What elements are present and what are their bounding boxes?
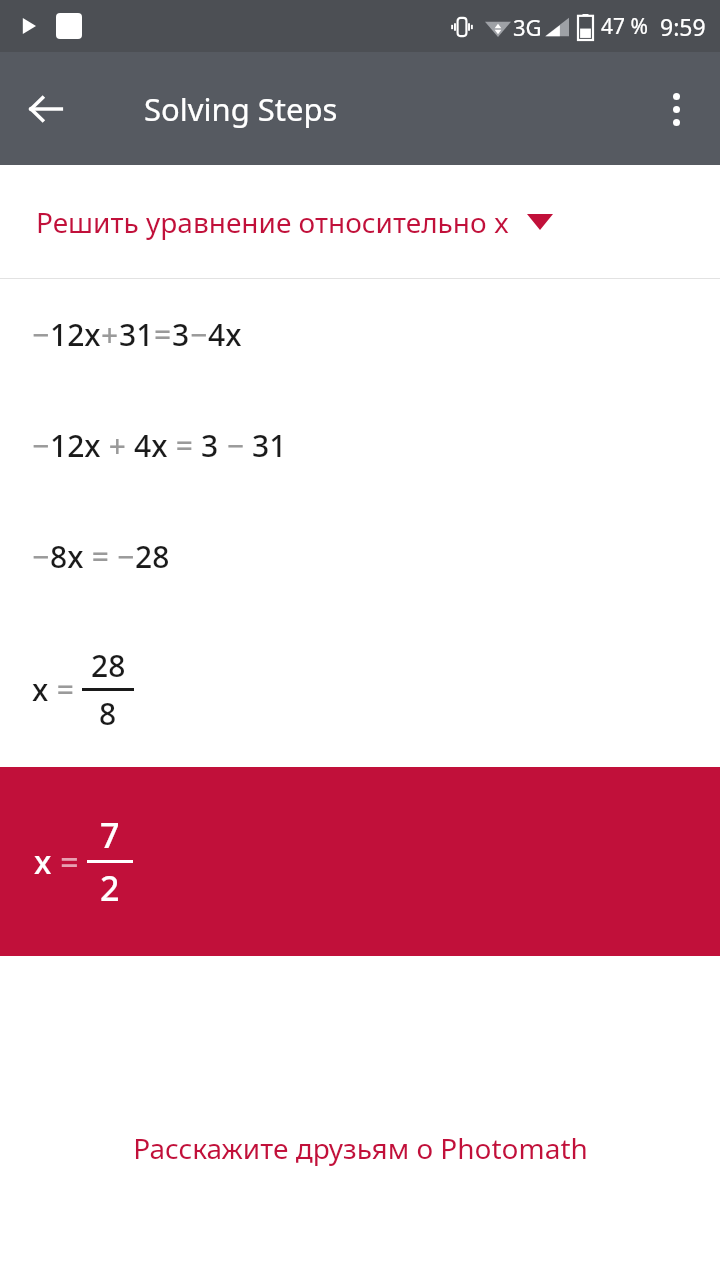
staticText: 8x xyxy=(50,536,84,577)
button[interactable]: Back xyxy=(10,73,82,145)
staticText: 31 xyxy=(252,425,287,466)
staticText: = xyxy=(84,536,117,577)
staticText: x xyxy=(32,669,49,710)
staticText: 9:59 xyxy=(660,11,706,42)
staticText: 31 xyxy=(119,314,154,355)
staticText: − xyxy=(117,536,135,577)
button[interactable]: Решить уравнение относительно x xyxy=(0,165,720,278)
button[interactable]: More options xyxy=(640,73,712,145)
staticText: 28 xyxy=(91,645,126,686)
button[interactable]: Расскажите друзьям о Photomath xyxy=(0,1100,720,1196)
staticText: x xyxy=(34,840,52,884)
staticText: 12x xyxy=(50,314,101,355)
staticText: Расскажите друзьям о Photomath xyxy=(133,1129,588,1167)
button[interactable]: − xyxy=(0,390,720,501)
staticText: 8 xyxy=(99,693,117,734)
staticText: − xyxy=(219,425,252,466)
staticText: 2 xyxy=(100,865,120,911)
staticText: 3 xyxy=(172,314,190,355)
staticText: 7 xyxy=(100,812,120,858)
staticText: = xyxy=(168,425,201,466)
staticText: − xyxy=(190,314,208,355)
button[interactable]: − xyxy=(0,279,720,390)
staticText: 4x xyxy=(208,314,242,355)
staticText: 47 % xyxy=(601,12,648,41)
button[interactable]: x xyxy=(0,612,720,767)
staticText: 28 xyxy=(135,536,170,577)
button[interactable]: − xyxy=(0,501,720,612)
staticText: − xyxy=(32,314,50,355)
staticText: − xyxy=(32,425,50,466)
staticText: = xyxy=(52,840,87,884)
staticText: + xyxy=(101,425,134,466)
staticText: 4x xyxy=(134,425,168,466)
staticText: − xyxy=(32,536,50,577)
staticText: 12x xyxy=(50,425,101,466)
staticText: Решить уравнение относительно x xyxy=(36,203,509,241)
staticText: 3G xyxy=(513,12,542,42)
staticText: 3 xyxy=(201,425,219,466)
staticText: Solving Steps xyxy=(144,88,338,130)
staticText: = xyxy=(49,669,82,710)
staticText: + xyxy=(101,314,119,355)
staticText: = xyxy=(154,314,172,355)
button[interactable]: x xyxy=(0,767,720,956)
